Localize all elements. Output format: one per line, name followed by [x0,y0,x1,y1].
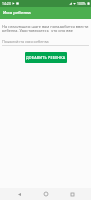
staticText: 14:23 [2,1,11,6]
staticText: На следующем шаге вам понадобится ввести… [2,24,89,28]
button[interactable]: Back [12,188,26,200]
staticText: Имя ребенка [3,9,31,15]
button[interactable]: Home [39,188,53,200]
staticText: ДОБАВИТЬ РЕБЕНКА [26,55,66,60]
staticText: 100% [77,1,86,6]
staticText: ребенка. Удостоверьтесь, что оно вве [2,28,73,32]
button[interactable]: Recent apps [65,188,79,200]
staticText: Пожалуйста имя ребенка [2,39,49,43]
button[interactable]: ДОБАВИТЬ РЕБЕНКА [25,52,67,63]
